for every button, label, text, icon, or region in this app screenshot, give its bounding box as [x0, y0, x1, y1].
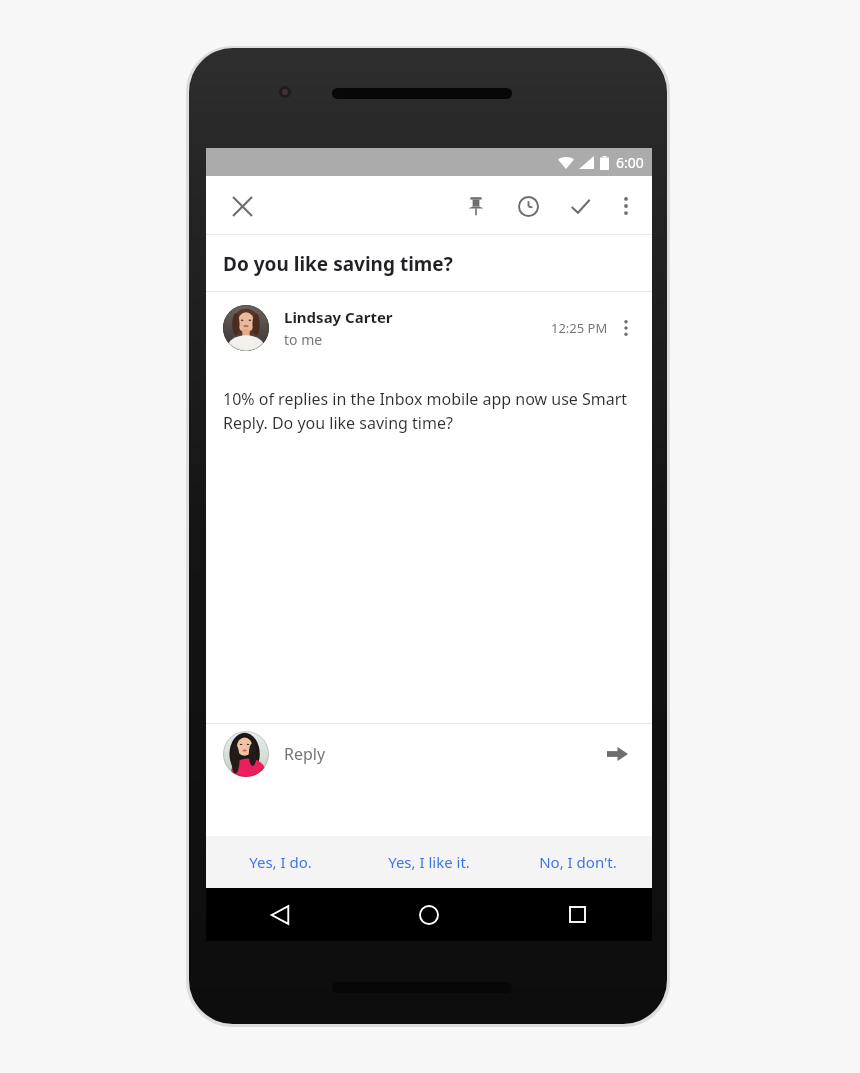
- button[interactable]: Done: [558, 184, 602, 228]
- button[interactable]: More options: [606, 186, 646, 226]
- button[interactable]: Recent apps: [503, 888, 652, 941]
- button[interactable]: Close: [220, 184, 264, 228]
- button[interactable]: Lindsay Carter: [206, 292, 652, 364]
- button[interactable]: Home: [354, 888, 503, 941]
- staticText: 6:00: [616, 153, 644, 172]
- button[interactable]: Reply: [206, 724, 652, 784]
- button[interactable]: Snooze: [506, 184, 550, 228]
- staticText: Do you like saving time?: [223, 251, 453, 277]
- staticText: Lindsay Carter: [284, 307, 393, 327]
- button[interactable]: Yes, I do.: [206, 836, 354, 888]
- button[interactable]: Back: [206, 888, 354, 941]
- staticText: 12:25 PM: [551, 319, 608, 337]
- staticText: Yes, I like it.: [388, 852, 470, 872]
- staticText: No, I don't.: [539, 852, 617, 872]
- other: Send: [600, 737, 634, 771]
- staticText: to me: [284, 330, 323, 349]
- button[interactable]: No, I don't.: [503, 836, 652, 888]
- staticText: Reply: [284, 743, 600, 765]
- staticText: 10% of replies in the Inbox mobile app n…: [223, 388, 632, 434]
- button[interactable]: Yes, I like it.: [354, 836, 503, 888]
- staticText: Yes, I do.: [249, 852, 312, 872]
- button[interactable]: Message options: [608, 310, 644, 346]
- button[interactable]: Pin: [454, 184, 498, 228]
